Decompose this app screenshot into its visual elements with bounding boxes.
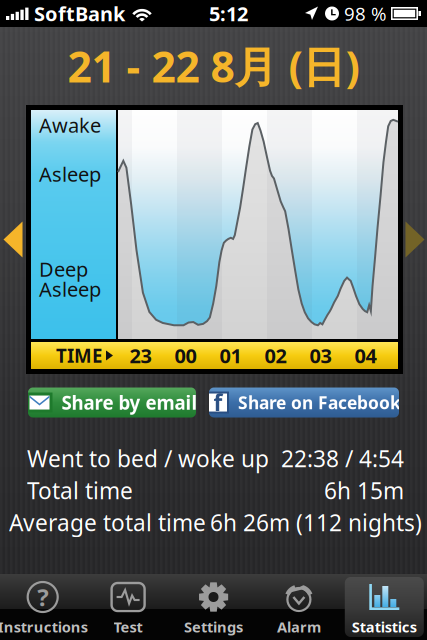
staticText: Awake [39,112,101,138]
staticText: 6h 26m (112 nights) [210,507,422,537]
staticText: Share on Facebook [238,391,401,414]
staticText: 23 [129,342,151,369]
staticText: 00 [174,342,196,369]
button[interactable]: Next day [403,105,427,374]
staticText: SoftBank [34,0,125,27]
staticText: Instructions [0,617,88,636]
staticText: 21 - 22 8月 (日) [67,38,359,94]
button[interactable]: Alarm [256,574,342,640]
staticText: 22:38 / 4:54 [281,443,404,473]
button[interactable]: ? [0,574,85,640]
staticText: Total time [27,475,133,505]
staticText: ? [37,581,48,613]
staticText: Statistics [352,617,417,636]
button[interactable]: f [209,387,399,417]
staticText: Went to bed / woke up [27,443,269,473]
staticText: Alarm [277,617,321,636]
staticText: 01 [219,342,241,369]
staticText: Asleep [39,161,101,187]
staticText: 04 [354,342,376,369]
staticText: 5:12 [209,0,248,27]
staticText: TIME [56,343,102,368]
staticText: Asleep [39,276,101,302]
staticText: Test [114,617,143,636]
staticText: 6h 15m [324,475,404,505]
staticText: Deep [39,256,88,282]
staticText: Average total time [9,507,206,537]
staticText: 02 [264,342,286,369]
staticText: Share by email [61,390,197,415]
button[interactable]: Settings [171,574,256,640]
staticText: f [213,387,222,417]
button[interactable]: Share by email [28,387,196,417]
button[interactable]: Previous day [0,105,26,374]
staticText: 03 [309,342,331,369]
staticText: Settings [184,617,243,636]
staticText: 98 % [344,1,387,26]
button[interactable]: Statistics [342,574,427,640]
button[interactable]: Test [85,574,171,640]
